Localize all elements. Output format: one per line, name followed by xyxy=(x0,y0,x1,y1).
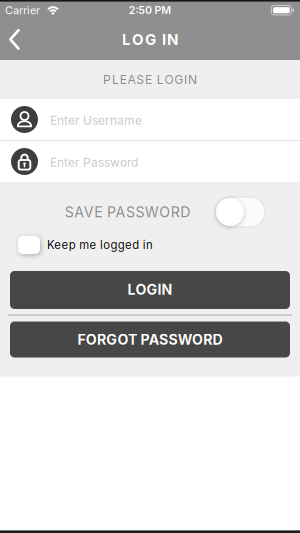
staticText: LOGIN xyxy=(127,281,172,298)
staticText: SAVE PASSWORD xyxy=(65,203,190,220)
button[interactable]: Keep me logged in xyxy=(18,236,153,254)
staticText: PLEASE LOGIN xyxy=(103,72,197,87)
button[interactable]: Save Password xyxy=(215,197,265,227)
button[interactable]: Back xyxy=(0,19,20,60)
button[interactable]: LOGIN xyxy=(0,271,300,309)
staticText: Enter Username xyxy=(50,113,142,127)
staticText: FORGOT PASSWORD xyxy=(77,331,223,348)
staticText: L O G I N xyxy=(122,30,178,48)
staticText: Carrier xyxy=(5,4,40,17)
button[interactable]: Enter Username xyxy=(0,99,300,140)
staticText: 2:50 PM xyxy=(129,4,171,17)
staticText: Enter Password xyxy=(50,155,138,169)
button[interactable]: Enter Password xyxy=(0,141,300,182)
staticText: Keep me logged in xyxy=(47,238,153,252)
button[interactable]: FORGOT PASSWORD xyxy=(0,321,300,357)
